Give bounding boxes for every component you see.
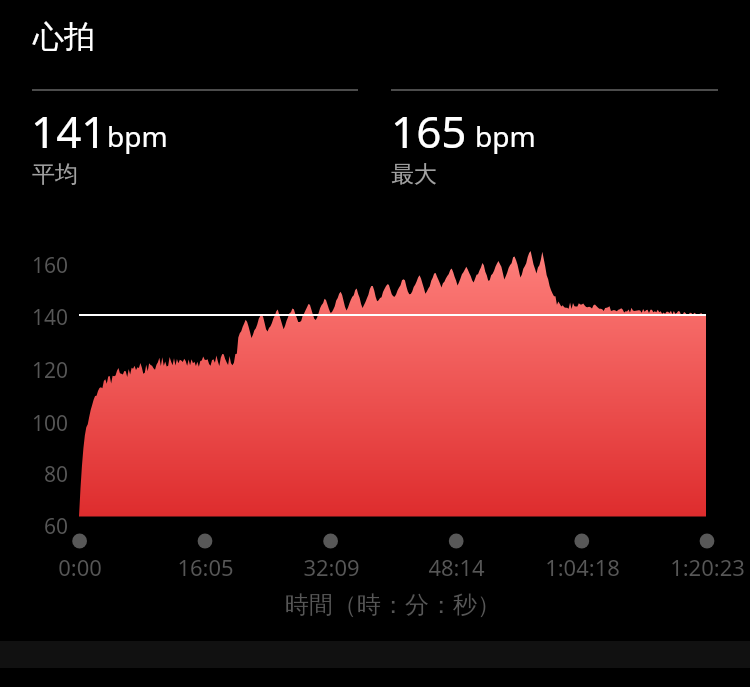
staticText: 最大: [391, 160, 437, 189]
staticText: 32:09: [303, 552, 360, 582]
staticText: 16:05: [177, 552, 234, 582]
staticText: 160: [32, 251, 69, 279]
staticText: 120: [32, 356, 69, 384]
staticText: bpm: [475, 117, 536, 155]
staticText: 60: [44, 512, 69, 540]
staticText: 141: [31, 101, 107, 161]
staticText: bpm: [107, 117, 168, 155]
staticText: 80: [44, 460, 69, 488]
staticText: 165: [391, 101, 467, 161]
staticText: 0:00: [58, 552, 102, 582]
staticText: 時間（時：分：秒）: [285, 590, 501, 620]
button[interactable]: 141: [32, 89, 358, 187]
staticText: 平均: [32, 160, 78, 189]
staticText: 1:20:23: [670, 552, 745, 582]
staticText: 心拍: [33, 17, 95, 56]
staticText: 1:04:18: [545, 552, 620, 582]
button[interactable]: 心拍数グラフ: [0, 230, 750, 620]
button[interactable]: 165: [391, 89, 718, 187]
staticText: 48:14: [428, 552, 485, 582]
staticText: 140: [32, 303, 69, 331]
staticText: 100: [32, 409, 69, 437]
